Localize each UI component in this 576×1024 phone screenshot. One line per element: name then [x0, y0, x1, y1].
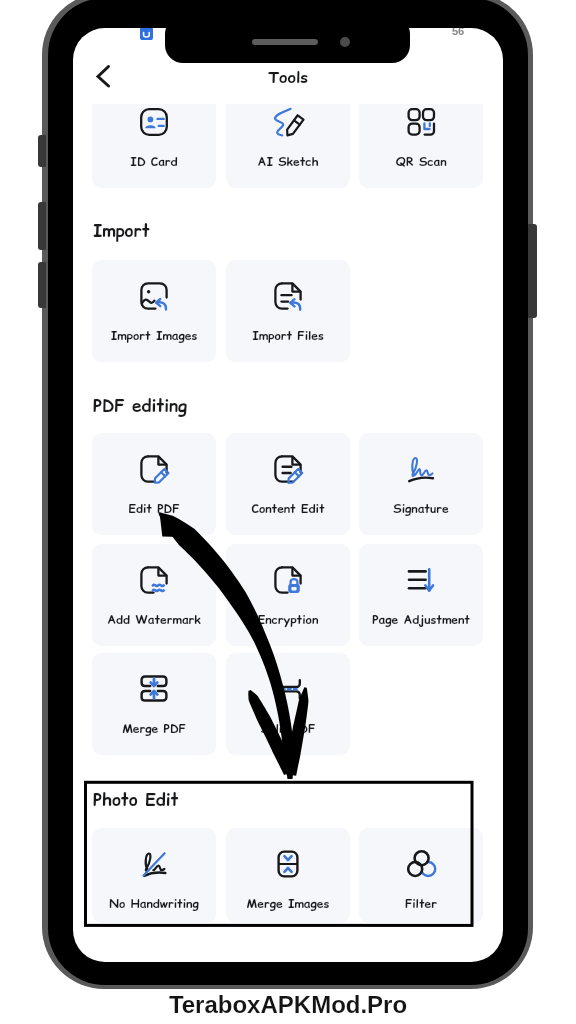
staticText: Merge Images [226, 895, 350, 912]
staticText: Add Watermark [92, 611, 216, 628]
staticText: PDF editing [93, 394, 187, 418]
staticText: Content Edit [226, 500, 350, 517]
button[interactable]: Merge PDF [92, 653, 216, 755]
button[interactable]: Import Images [92, 260, 216, 362]
button[interactable]: Signature [359, 433, 483, 535]
button[interactable]: Encryption [226, 544, 350, 646]
button[interactable]: No Handwriting [92, 828, 216, 923]
button[interactable]: Merge Images [226, 828, 350, 923]
staticText: Import Files [226, 327, 350, 344]
button[interactable]: ID Card [92, 104, 216, 188]
staticText: Encryption [226, 611, 350, 628]
button[interactable]: Import Files [226, 260, 350, 362]
staticText: Import [93, 219, 150, 243]
button[interactable]: AI Sketch [226, 104, 350, 188]
staticText: Edit PDF [92, 500, 216, 517]
staticText: Photo Edit [93, 788, 179, 812]
button[interactable]: Split PDF [226, 653, 350, 755]
staticText: 56 [452, 28, 465, 37]
staticText: Page Adjustment [359, 611, 483, 628]
button[interactable]: QR Scan [359, 104, 483, 188]
button[interactable]: Filter [359, 828, 483, 923]
staticText: Import Images [92, 327, 216, 344]
staticText: QR Scan [359, 153, 483, 170]
button[interactable]: Add Watermark [92, 544, 216, 646]
button[interactable]: Page Adjustment [359, 544, 483, 646]
button[interactable]: Edit PDF [92, 433, 216, 535]
staticText: Split PDF [226, 720, 350, 737]
staticText: Tools [73, 66, 503, 88]
staticText: TeraboxAPKMod.Pro [0, 991, 576, 1018]
staticText: Merge PDF [92, 720, 216, 737]
staticText: ID Card [92, 153, 216, 170]
staticText: AI Sketch [226, 153, 350, 170]
button[interactable]: Back [87, 58, 131, 94]
staticText: Signature [359, 500, 483, 517]
staticText: No Handwriting [92, 895, 216, 912]
staticText: Filter [359, 895, 483, 912]
button[interactable]: Content Edit [226, 433, 350, 535]
